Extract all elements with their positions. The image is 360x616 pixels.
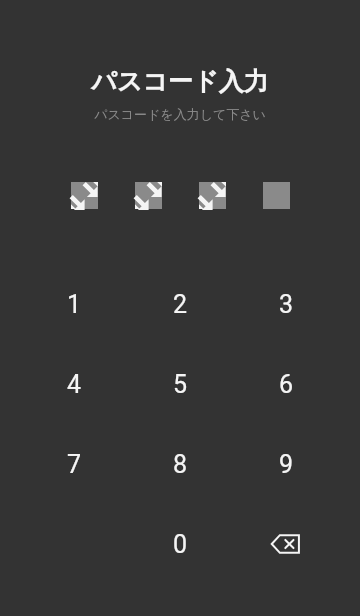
staticText: 2 — [173, 290, 188, 319]
button[interactable]: 9 — [233, 424, 339, 504]
button[interactable]: 5 — [127, 344, 233, 424]
staticText: 6 — [279, 370, 294, 399]
button[interactable]: 0 — [127, 504, 233, 584]
staticText: 7 — [67, 450, 82, 479]
other: Delete — [269, 527, 303, 561]
button[interactable]: Delete — [233, 504, 339, 584]
button[interactable]: 7 — [21, 424, 127, 504]
staticText: 5 — [173, 370, 188, 399]
staticText: 1 — [67, 290, 82, 319]
staticText: パスコード入力 — [91, 66, 269, 97]
staticText: 4 — [67, 370, 82, 399]
button[interactable]: 8 — [127, 424, 233, 504]
button[interactable]: 6 — [233, 344, 339, 424]
button[interactable]: 4 — [21, 344, 127, 424]
button[interactable]: 2 — [127, 264, 233, 344]
staticText: パスコードを入力して下さい — [94, 106, 266, 122]
staticText: 8 — [173, 450, 188, 479]
staticText: 0 — [173, 530, 188, 559]
staticText: 3 — [279, 290, 294, 319]
button[interactable]: 3 — [233, 264, 339, 344]
button[interactable]: 1 — [21, 264, 127, 344]
staticText: 9 — [279, 450, 294, 479]
